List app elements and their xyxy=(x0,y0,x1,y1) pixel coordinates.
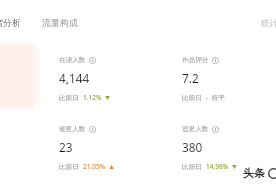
button[interactable]: 流量构成 xyxy=(38,14,82,31)
staticText: 作品评分 xyxy=(182,56,209,64)
staticText: 1.12% xyxy=(83,93,102,102)
staticText: 头条 xyxy=(243,166,265,180)
button[interactable]: 催更人数 xyxy=(59,125,114,171)
button[interactable]: 读者分析 xyxy=(0,14,25,31)
staticText: 流量构成 xyxy=(42,17,78,28)
staticText: 比前日 xyxy=(59,94,79,102)
button[interactable]: 统计 xyxy=(260,15,276,32)
button[interactable]: 追更人数 xyxy=(182,125,237,171)
button[interactable]: 作品评分 xyxy=(182,56,225,102)
staticText: 14.98% xyxy=(206,162,229,171)
staticText: 7.2 xyxy=(182,70,199,86)
staticText: 比前日 xyxy=(182,163,202,171)
other: 指标说明 xyxy=(89,57,96,64)
staticText: 催更人数 xyxy=(59,125,86,133)
staticText: 在读人数 xyxy=(59,56,86,64)
staticText: 读者分析 xyxy=(0,17,21,28)
staticText: 统计 xyxy=(261,18,276,29)
other: 指标说明 xyxy=(212,126,219,133)
staticText: 23 xyxy=(59,139,73,155)
staticText: 380 xyxy=(182,139,203,155)
staticText: 4,144 xyxy=(59,70,90,86)
staticText: 比前日 xyxy=(182,94,202,102)
other: 指标说明 xyxy=(89,126,96,133)
staticText: 追更人数 xyxy=(182,125,209,133)
staticText: - 持平 xyxy=(206,93,225,102)
button[interactable]: 在读人数 xyxy=(59,56,110,102)
staticText: 比前日 xyxy=(59,163,79,171)
staticText: 21.05% xyxy=(83,162,106,171)
other: 指标说明 xyxy=(212,57,219,64)
